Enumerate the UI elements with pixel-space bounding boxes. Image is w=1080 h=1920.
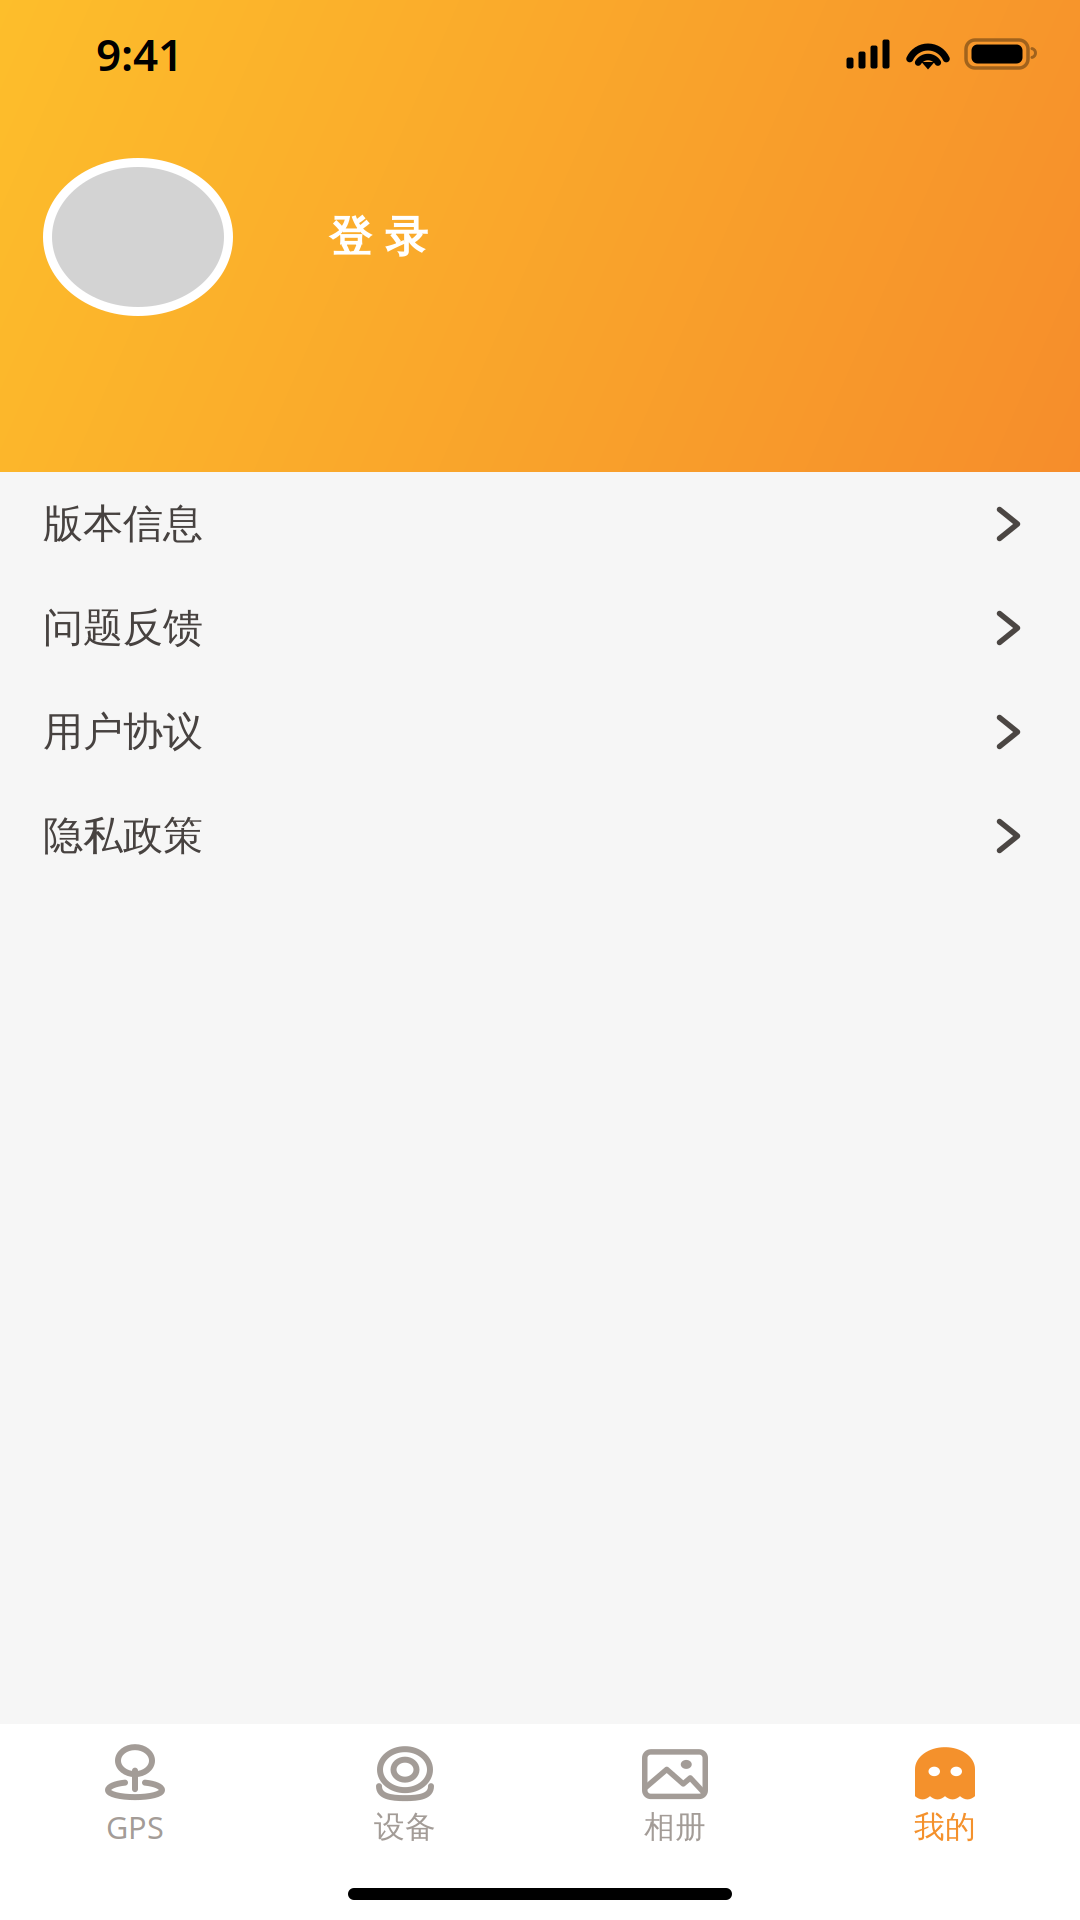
staticText: 我的 (914, 1808, 976, 1846)
staticText: 用户协议 (43, 707, 203, 756)
button[interactable]: 用户协议 (0, 680, 1080, 784)
button[interactable]: 头像 (43, 158, 233, 316)
button[interactable]: 登 录 (233, 158, 468, 316)
staticText: 登 录 (329, 211, 428, 263)
staticText: GPS (106, 1807, 164, 1847)
staticText: 设备 (374, 1808, 436, 1846)
button[interactable]: 设备 (270, 1734, 540, 1858)
button[interactable]: 我的 (810, 1734, 1080, 1858)
button[interactable]: 问题反馈 (0, 576, 1080, 680)
staticText: 相册 (644, 1808, 706, 1846)
staticText: 问题反馈 (43, 603, 203, 652)
button[interactable]: 相册 (540, 1734, 810, 1858)
button[interactable]: 隐私政策 (0, 784, 1080, 888)
staticText: 版本信息 (43, 499, 203, 548)
button[interactable]: 版本信息 (0, 472, 1080, 576)
staticText: 隐私政策 (43, 811, 203, 860)
staticText: 9:41 (96, 25, 183, 83)
button[interactable]: GPS (0, 1734, 270, 1858)
